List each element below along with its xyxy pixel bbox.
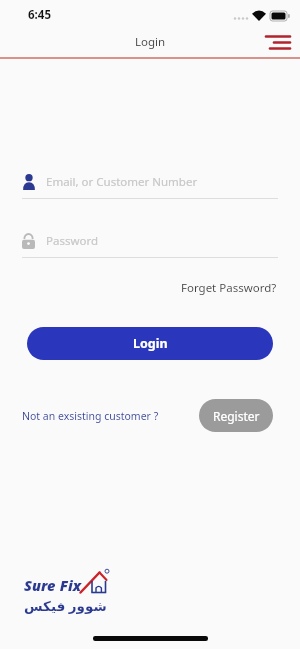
button[interactable]: Login — [27, 327, 273, 360]
staticText: Password — [46, 233, 99, 249]
staticText: Fix — [56, 575, 81, 595]
staticText: Sure — [24, 575, 56, 595]
staticText: Login — [135, 34, 166, 50]
staticText: شوور فيكس — [24, 597, 107, 615]
button[interactable]: Forget Password? — [181, 280, 277, 296]
staticText: Register — [213, 408, 260, 424]
staticText: 6:45 — [28, 7, 51, 23]
staticText: Not an exsisting customer ? — [22, 409, 159, 423]
staticText: Login — [133, 335, 168, 352]
staticText: Email, or Customer Number — [46, 174, 198, 190]
button[interactable]: Not an exsisting customer ? — [22, 409, 159, 423]
button[interactable] — [265, 31, 291, 53]
button[interactable]: Register — [199, 399, 273, 432]
staticText: Forget Password? — [181, 280, 277, 296]
